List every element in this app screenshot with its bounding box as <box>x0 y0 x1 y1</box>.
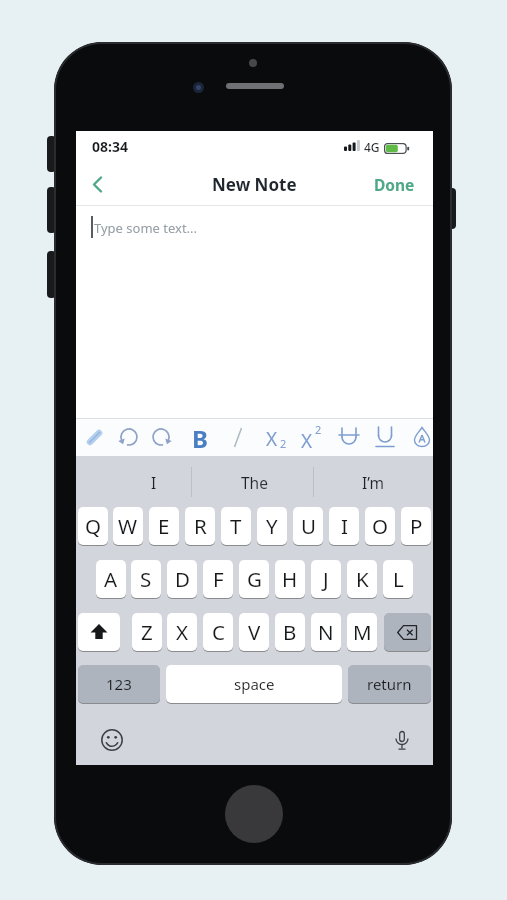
staticText: X <box>301 428 313 454</box>
button[interactable]: B <box>275 613 305 651</box>
button[interactable] <box>388 727 416 755</box>
staticText: 123 <box>106 674 132 694</box>
button[interactable]: U <box>293 507 323 545</box>
button[interactable] <box>149 425 173 449</box>
button[interactable]: Done <box>366 169 422 199</box>
staticText: P <box>410 512 423 540</box>
button[interactable]: I <box>116 465 192 499</box>
button[interactable]: B <box>188 422 212 452</box>
staticText: B <box>192 422 208 452</box>
button[interactable] <box>78 613 120 651</box>
staticText: O <box>372 512 389 540</box>
button[interactable]: 123 <box>78 665 160 703</box>
button[interactable]: G <box>239 560 269 598</box>
button[interactable]: Y <box>257 507 287 545</box>
staticText: 2 <box>315 422 322 437</box>
staticText: C <box>212 618 225 646</box>
staticText: space <box>234 674 275 694</box>
button[interactable]: H <box>275 560 305 598</box>
button[interactable]: O <box>365 507 395 545</box>
staticText: I <box>151 472 157 493</box>
button[interactable]: I’m <box>314 465 432 499</box>
staticText: G <box>247 565 262 593</box>
staticText: New Note <box>212 173 297 196</box>
staticText: R <box>194 512 207 540</box>
button[interactable]: F <box>203 560 233 598</box>
staticText: Y <box>266 512 278 540</box>
button[interactable]: X <box>263 422 291 452</box>
staticText: V <box>248 618 261 646</box>
staticText: I <box>341 512 348 540</box>
staticText: Z <box>141 618 153 646</box>
staticText: F <box>213 565 224 593</box>
staticText: U <box>301 512 316 540</box>
button[interactable]: X <box>298 422 326 452</box>
button[interactable]: C <box>203 613 233 651</box>
staticText: X <box>176 618 189 646</box>
staticText: X <box>266 426 278 452</box>
button[interactable]: A <box>96 560 126 598</box>
button[interactable]: E <box>149 507 179 545</box>
button[interactable] <box>226 424 250 450</box>
button[interactable]: The <box>195 465 313 499</box>
button[interactable]: S <box>131 560 161 598</box>
staticText: return <box>367 674 412 694</box>
staticText: J <box>323 565 329 593</box>
button[interactable] <box>373 424 397 450</box>
button[interactable] <box>82 425 106 449</box>
staticText: 4G <box>364 139 380 155</box>
button[interactable]: return <box>348 665 431 703</box>
staticText: Type some text... <box>94 219 198 237</box>
button[interactable]: J <box>311 560 341 598</box>
button[interactable]: P <box>401 507 431 545</box>
button[interactable]: space <box>166 665 342 703</box>
staticText: 08:34 <box>92 137 128 156</box>
button[interactable]: V <box>239 613 269 651</box>
staticText: D <box>175 565 190 593</box>
button[interactable]: N <box>311 613 341 651</box>
button[interactable]: L <box>383 560 413 598</box>
button[interactable]: I <box>329 507 359 545</box>
staticText: Done <box>374 174 415 195</box>
staticText: N <box>318 618 334 646</box>
staticText: K <box>356 565 369 593</box>
button[interactable] <box>225 785 283 843</box>
button[interactable]: Z <box>132 613 162 651</box>
button[interactable] <box>337 424 361 450</box>
button[interactable]: T <box>221 507 251 545</box>
button[interactable]: X <box>167 613 197 651</box>
button[interactable] <box>117 425 141 449</box>
staticText: E <box>158 512 170 540</box>
button[interactable] <box>384 613 431 651</box>
staticText: The <box>241 472 268 493</box>
staticText: S <box>140 565 152 593</box>
button[interactable] <box>82 169 112 199</box>
staticText: 2 <box>280 436 287 451</box>
button[interactable]: Q <box>78 507 108 545</box>
staticText: M <box>353 618 372 646</box>
button[interactable]: M <box>347 613 377 651</box>
staticText: H <box>282 565 298 593</box>
button[interactable]: W <box>113 507 143 545</box>
staticText: I’m <box>362 472 384 493</box>
staticText: T <box>230 512 242 540</box>
button[interactable]: R <box>185 507 215 545</box>
staticText: Q <box>85 512 102 540</box>
button[interactable] <box>98 726 126 754</box>
staticText: A <box>104 565 118 593</box>
staticText: B <box>283 618 297 646</box>
staticText: W <box>118 512 138 540</box>
button[interactable]: K <box>347 560 377 598</box>
staticText: L <box>393 565 404 593</box>
button[interactable]: D <box>167 560 197 598</box>
button[interactable] <box>410 424 433 450</box>
